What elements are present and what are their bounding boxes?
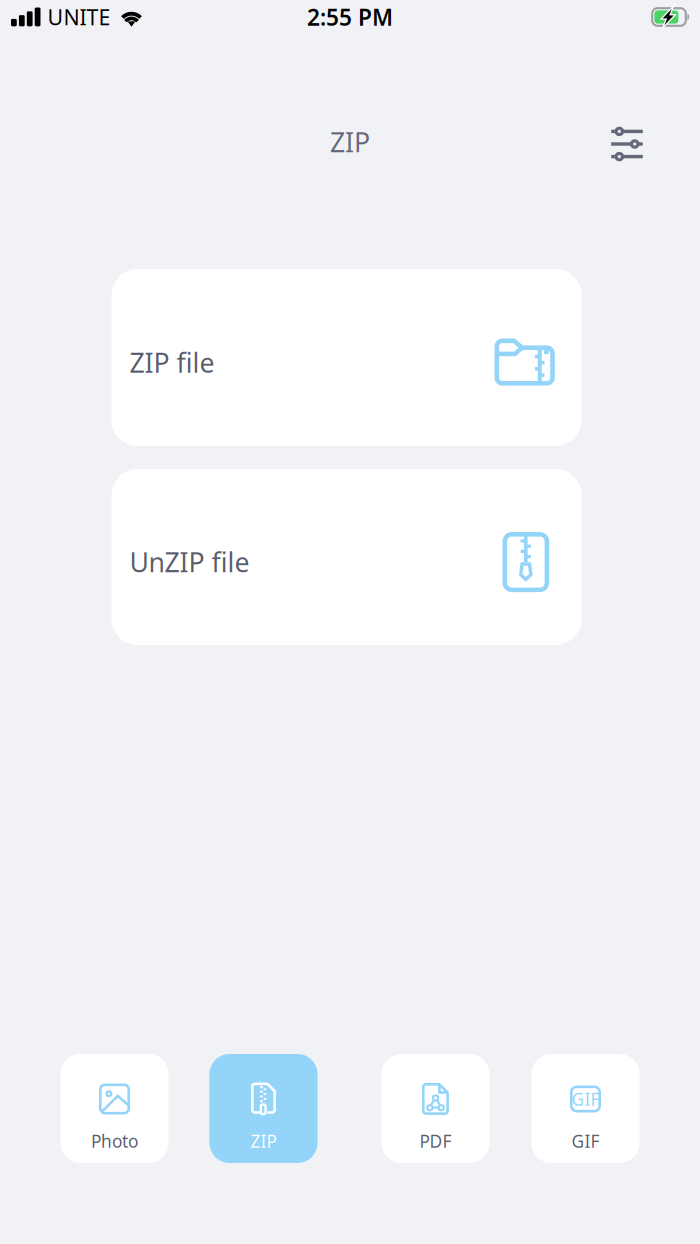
staticText: UNITE xyxy=(47,3,110,31)
staticText: PDF xyxy=(419,1129,451,1152)
button[interactable]: UnZIP file xyxy=(111,469,581,645)
button[interactable]: Photo xyxy=(60,1054,168,1163)
staticText: GIF xyxy=(571,1087,599,1110)
button[interactable]: Settings xyxy=(601,120,652,168)
button[interactable]: ZIP file xyxy=(111,269,581,446)
staticText: Photo xyxy=(91,1129,138,1152)
staticText: GIF xyxy=(571,1129,599,1152)
button[interactable]: ZIP xyxy=(209,1054,317,1163)
button[interactable]: GIF xyxy=(531,1054,639,1163)
button[interactable]: PDF xyxy=(381,1054,489,1163)
staticText: ZIP file xyxy=(129,345,214,380)
staticText: UnZIP file xyxy=(129,544,249,580)
staticText: ZIP xyxy=(330,124,370,160)
staticText: 2:55 PM xyxy=(307,2,393,32)
staticText: ZIP xyxy=(250,1129,276,1152)
